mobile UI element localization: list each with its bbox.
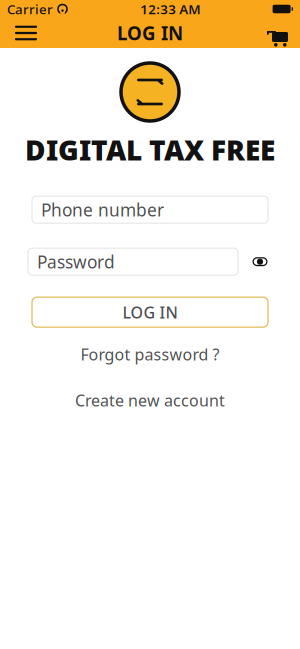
button[interactable]: Show password — [248, 250, 272, 274]
button[interactable]: Menu — [0, 18, 52, 48]
staticText: 12:33 AM — [140, 0, 200, 18]
staticText: DIGITAL TAX FREE — [25, 131, 275, 168]
staticText: Carrier — [7, 0, 53, 18]
staticText: Password — [37, 250, 115, 273]
staticText: LOG IN — [117, 21, 183, 45]
staticText: Create new account — [75, 390, 225, 411]
staticText: Forgot password ? — [80, 344, 219, 365]
button[interactable]: Forgot password ? — [60, 344, 240, 364]
staticText: LOG IN — [122, 302, 177, 323]
button[interactable]: Create new account — [60, 390, 240, 410]
button[interactable]: LOG IN — [32, 297, 268, 327]
button[interactable]: Cart — [248, 18, 300, 48]
staticText: Phone number — [41, 198, 164, 221]
